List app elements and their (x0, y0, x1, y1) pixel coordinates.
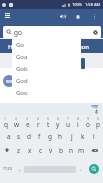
button[interactable]: . (76, 162, 85, 176)
staticText: l (93, 132, 95, 141)
staticText: u (66, 120, 71, 129)
button[interactable]: 6 (53, 115, 63, 129)
button[interactable]: Settings (72, 11, 83, 22)
staticText: 6 (57, 116, 60, 121)
button[interactable]: Go (12, 39, 81, 51)
staticText: w (14, 120, 20, 129)
staticText: z (17, 146, 21, 155)
staticText: t (47, 120, 50, 129)
button[interactable]: 8 (73, 115, 83, 129)
staticText: 7 (67, 116, 70, 121)
staticText: r (37, 120, 40, 129)
staticText: 0 (97, 116, 100, 121)
staticText: , (19, 166, 21, 173)
staticText: d (27, 132, 31, 141)
button[interactable]: a (4, 129, 14, 143)
button[interactable]: More options (89, 11, 100, 22)
button[interactable]: God (12, 75, 81, 87)
button[interactable]: z (13, 143, 24, 157)
button[interactable]: 3 (22, 115, 33, 129)
button[interactable]: Gob (12, 63, 81, 75)
staticText: c (39, 146, 43, 155)
staticText: 1 (4, 116, 7, 121)
staticText: 4 (37, 116, 40, 121)
button[interactable]: ?123 (0, 162, 15, 176)
staticText: g (48, 132, 52, 141)
staticText: Goa (16, 53, 28, 61)
button[interactable]: Shift (0, 143, 13, 157)
staticText: Hi, Simon (8, 43, 36, 51)
staticText: f (38, 132, 41, 141)
staticText: 9 (87, 116, 90, 121)
staticText: 100% (72, 2, 83, 7)
staticText: e (26, 120, 30, 129)
button[interactable]: Sound (57, 11, 68, 22)
staticText: a (7, 132, 11, 141)
button[interactable]: f (34, 129, 44, 143)
staticText: Simon (71, 43, 90, 51)
button[interactable]: j (66, 129, 77, 143)
staticText: n (69, 146, 74, 155)
button[interactable]: 7 (63, 115, 73, 129)
button[interactable]: l (88, 129, 99, 143)
staticText: WV (6, 79, 13, 84)
staticText: ?123 (3, 166, 13, 172)
button[interactable]: 2 (11, 115, 22, 129)
staticText: k (81, 132, 85, 141)
button[interactable]: v (46, 143, 56, 157)
staticText: v (49, 146, 53, 155)
staticText: 2 (15, 116, 18, 121)
button[interactable]: n (66, 143, 76, 157)
button[interactable]: 5 (43, 115, 53, 129)
staticText: b (59, 146, 63, 155)
staticText: i (77, 120, 79, 129)
button[interactable]: c (35, 143, 46, 157)
staticText: s (17, 132, 21, 141)
staticText: Go (16, 41, 24, 49)
button[interactable]: Goo (12, 87, 81, 99)
button[interactable]: s (14, 129, 24, 143)
button[interactable]: Backspace (86, 143, 103, 157)
button[interactable]: b (56, 143, 66, 157)
staticText: 1:58 AM (85, 2, 101, 7)
button[interactable]: Voice input (93, 108, 100, 115)
staticText: God (16, 77, 28, 85)
button[interactable]: g (44, 129, 55, 143)
button[interactable]: x (24, 143, 35, 157)
staticText: j (71, 132, 73, 141)
staticText: 3 (26, 116, 29, 121)
staticText: q (4, 120, 8, 129)
staticText: go (14, 28, 22, 37)
staticText: m (78, 146, 85, 155)
button[interactable]: 0 (93, 115, 103, 129)
button[interactable]: 9 (83, 115, 93, 129)
staticText: Goo (16, 89, 28, 97)
staticText: o (86, 120, 90, 129)
button[interactable]: 1 (0, 115, 11, 129)
staticText: भाषा (91, 104, 99, 109)
button[interactable]: d (24, 129, 34, 143)
staticText: . (80, 166, 82, 173)
staticText: y (56, 120, 60, 129)
button[interactable]: Goa (12, 51, 81, 63)
button[interactable]: h (55, 129, 66, 143)
button[interactable]: Search (89, 164, 99, 174)
button[interactable]: k (77, 129, 88, 143)
staticText: Gob (16, 65, 28, 73)
staticText: h (58, 132, 63, 141)
button[interactable]: , (15, 162, 24, 176)
staticText: x (28, 146, 32, 155)
button[interactable]: Clear (92, 29, 98, 35)
button[interactable]: Menu (2, 10, 13, 21)
staticText: p (96, 120, 100, 129)
button[interactable]: 4 (33, 115, 43, 129)
staticText: 5 (47, 116, 50, 121)
button[interactable]: go (3, 26, 101, 38)
button[interactable]: m (76, 143, 86, 157)
staticText: 8 (77, 116, 80, 121)
